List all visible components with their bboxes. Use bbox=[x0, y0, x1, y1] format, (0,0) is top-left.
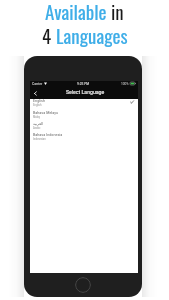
staticText: Languages bbox=[56, 21, 128, 49]
staticText: العربية bbox=[33, 122, 44, 126]
button[interactable]: Back bbox=[33, 90, 38, 97]
staticText: in bbox=[111, 0, 124, 25]
staticText: Available bbox=[45, 0, 111, 25]
staticText: English bbox=[33, 104, 42, 107]
staticText: English bbox=[33, 99, 45, 103]
staticText: Bahasa Indonesia bbox=[33, 133, 63, 137]
staticText: 9:25 PM bbox=[77, 82, 90, 86]
staticText: Select Language bbox=[66, 89, 105, 95]
staticText: Indonesian bbox=[33, 138, 46, 141]
button[interactable]: Bahasa Melayu bbox=[30, 107, 138, 119]
button[interactable]: Home bbox=[75, 277, 91, 293]
button[interactable]: العربية bbox=[30, 119, 138, 130]
button[interactable]: Bahasa Indonesia bbox=[30, 130, 138, 142]
staticText: Bahasa Melayu bbox=[33, 111, 58, 115]
staticText: 100% bbox=[121, 82, 129, 86]
button[interactable]: English bbox=[30, 98, 138, 107]
staticText: Carrier bbox=[32, 82, 43, 86]
staticText: Malay bbox=[33, 116, 40, 119]
staticText: 4 bbox=[42, 21, 56, 49]
staticText: Arabic bbox=[33, 127, 41, 130]
